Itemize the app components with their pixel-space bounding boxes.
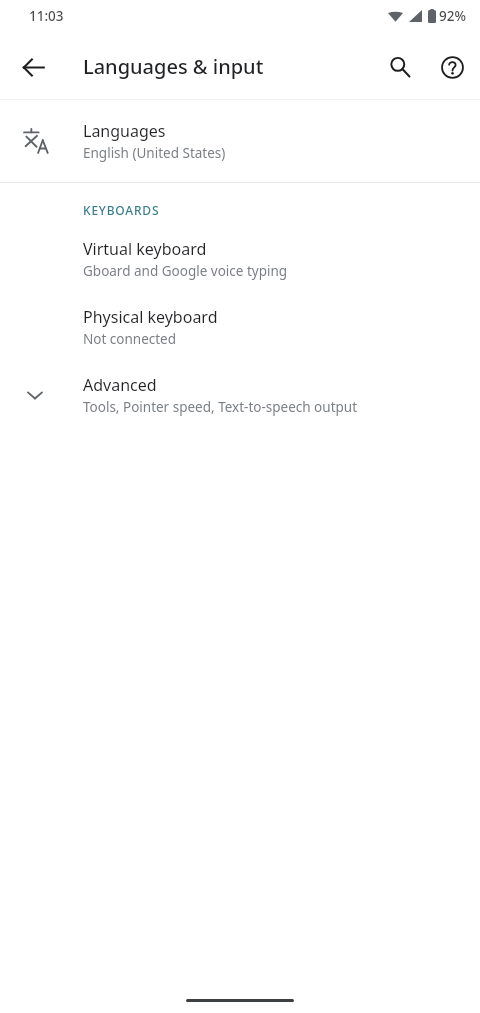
button[interactable]: Physical keyboard: [0, 306, 480, 348]
staticText: Physical keyboard: [83, 306, 218, 328]
button[interactable]: Advanced: [0, 374, 480, 416]
staticText: 11:03: [29, 7, 64, 25]
staticText: Languages & input: [83, 53, 264, 80]
staticText: 92%: [439, 7, 466, 25]
button[interactable]: Languages: [0, 100, 480, 182]
staticText: KEYBOARDS: [83, 202, 160, 218]
button[interactable]: Help: [428, 43, 476, 91]
staticText: Tools, Pointer speed, Text-to-speech out…: [83, 398, 358, 416]
staticText: Advanced: [83, 374, 157, 396]
staticText: Gboard and Google voice typing: [83, 262, 288, 280]
button[interactable]: Virtual keyboard: [0, 238, 480, 280]
staticText: Languages: [83, 120, 166, 142]
button[interactable]: Search: [376, 43, 424, 91]
staticText: English (United States): [83, 144, 226, 162]
staticText: Virtual keyboard: [83, 238, 207, 260]
staticText: Not connected: [83, 330, 177, 348]
button[interactable]: Back: [9, 43, 57, 91]
